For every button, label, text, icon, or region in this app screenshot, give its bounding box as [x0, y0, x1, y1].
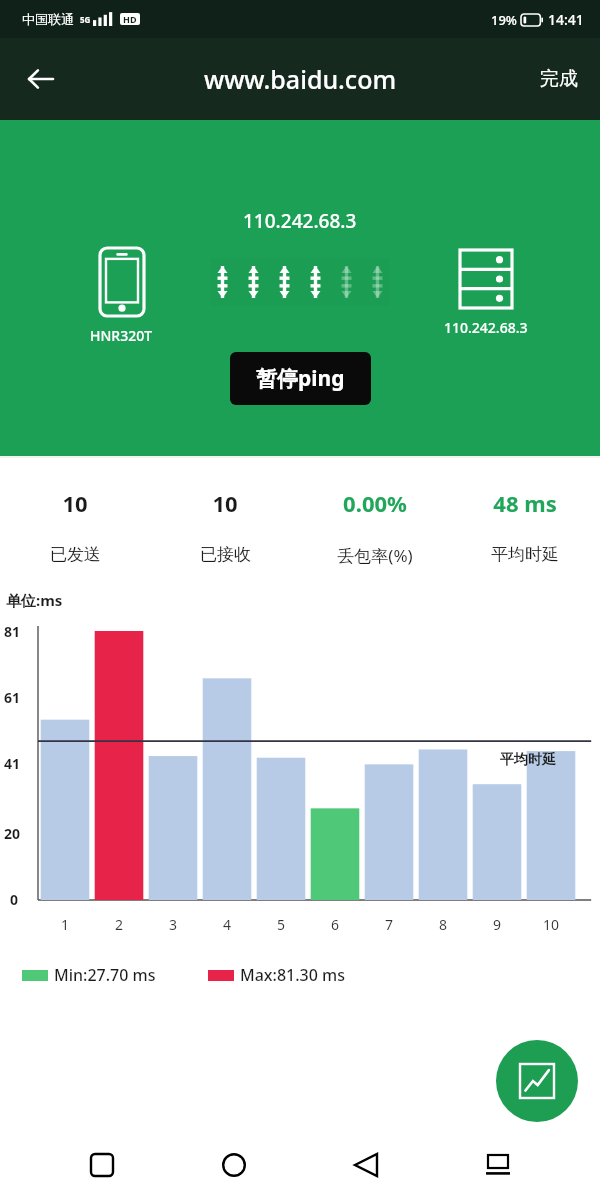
button[interactable]: Show chart: [496, 1040, 578, 1122]
staticText: www.baidu.com: [204, 62, 397, 96]
staticText: 中国联通: [22, 11, 74, 27]
staticText: 20: [4, 824, 21, 843]
staticText: 61: [4, 688, 21, 707]
staticText: 9: [493, 915, 502, 934]
button[interactable]: 10: [150, 458, 300, 588]
staticText: 已接收: [200, 544, 251, 565]
staticText: 10: [62, 488, 88, 518]
staticText: 5: [277, 915, 286, 934]
staticText: 1: [61, 915, 70, 934]
staticText: 2: [115, 915, 124, 934]
button[interactable]: Back: [336, 1135, 396, 1195]
button[interactable]: 0.00%: [300, 458, 450, 588]
staticText: 平均时延: [491, 544, 559, 565]
button[interactable]: 48 ms: [450, 458, 600, 588]
staticText: 6: [331, 915, 340, 934]
button[interactable]: Back: [12, 51, 68, 107]
button[interactable]: 10: [0, 458, 150, 588]
staticText: 81: [4, 622, 21, 641]
staticText: Min:27.70 ms: [54, 964, 156, 986]
staticText: HD: [123, 13, 137, 25]
staticText: 10: [212, 488, 238, 518]
staticText: 单位:ms: [6, 590, 63, 610]
button[interactable]: Recents: [72, 1135, 132, 1195]
staticText: 19%: [491, 11, 517, 29]
staticText: 0.00%: [343, 488, 407, 518]
staticText: 41: [4, 754, 21, 773]
button[interactable]: 完成: [532, 57, 586, 101]
staticText: HNR320T: [90, 326, 153, 345]
staticText: 0: [10, 890, 19, 909]
staticText: 暂停ping: [256, 364, 345, 393]
staticText: 48 ms: [493, 488, 557, 518]
staticText: Max:81.30 ms: [240, 964, 345, 986]
staticText: 丢包率(%): [337, 544, 413, 567]
staticText: 14:41: [548, 10, 584, 29]
staticText: 平均时延: [500, 751, 556, 769]
staticText: 110.242.68.3: [243, 208, 357, 234]
button[interactable]: Home: [204, 1135, 264, 1195]
staticText: 5G: [80, 14, 91, 25]
staticText: 已发送: [50, 544, 101, 565]
staticText: 4: [223, 915, 232, 934]
staticText: 110.242.68.3: [444, 318, 528, 337]
staticText: 7: [385, 915, 394, 934]
staticText: 8: [439, 915, 448, 934]
button[interactable]: 暂停ping: [230, 352, 371, 405]
staticText: 10: [543, 915, 560, 934]
button[interactable]: Split screen: [468, 1135, 528, 1195]
staticText: 完成: [540, 67, 578, 91]
staticText: 3: [169, 915, 178, 934]
